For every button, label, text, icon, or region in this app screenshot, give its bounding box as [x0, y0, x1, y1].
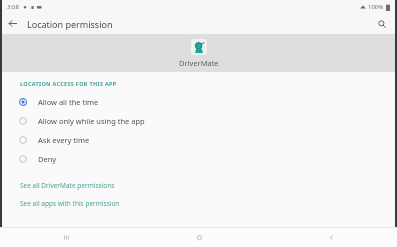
button[interactable]: Allow only while using the app: [2, 111, 395, 130]
staticText: Deny: [38, 154, 57, 164]
staticText: Ask every time: [38, 135, 90, 145]
button[interactable]: See all apps with this permission: [2, 198, 395, 209]
staticText: 3:08: [7, 3, 19, 11]
staticText: See all apps with this permission: [20, 199, 120, 208]
button[interactable]: Allow all the time: [2, 92, 395, 111]
button[interactable]: Search: [371, 13, 392, 34]
button[interactable]: Deny: [2, 149, 395, 168]
staticText: Allow only while using the app: [38, 116, 145, 126]
staticText: LOCATION ACCESS FOR THIS APP: [20, 80, 117, 87]
button[interactable]: See all DriverMate permissions: [2, 180, 395, 191]
button[interactable]: Home: [133, 228, 265, 247]
button[interactable]: Recents: [0, 228, 133, 247]
button[interactable]: Back: [2, 13, 23, 34]
staticText: See all DriverMate permissions: [20, 181, 115, 190]
button[interactable]: Ask every time: [2, 130, 395, 149]
staticText: 100%: [368, 3, 384, 11]
staticText: Allow all the time: [38, 97, 99, 107]
staticText: DriverMate: [179, 58, 219, 68]
staticText: Location permission: [27, 18, 113, 30]
